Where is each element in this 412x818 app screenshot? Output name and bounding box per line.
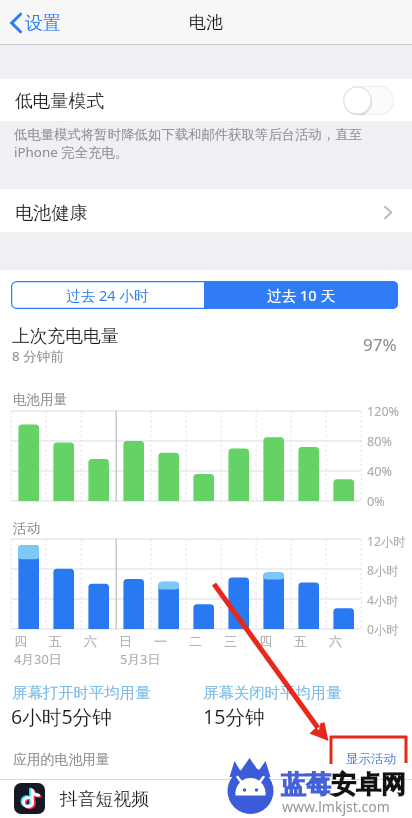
other: 电池健康 — [384, 206, 392, 219]
staticText: 0% — [367, 493, 385, 510]
staticText: 12小时 — [367, 533, 406, 550]
staticText: 一 — [154, 633, 167, 649]
staticText: www.lmkjst.com — [282, 797, 390, 816]
staticText: 80% — [367, 433, 392, 450]
staticText: 设置 — [25, 12, 61, 34]
button[interactable]: 过去 10 天 — [204, 281, 398, 309]
staticText: 蓝莓 — [281, 769, 331, 800]
staticText: 电池用量 — [13, 391, 67, 408]
staticText: 15分钟 — [203, 703, 265, 730]
staticText: 六 — [329, 633, 342, 649]
staticText: 应用的电池用量 — [13, 751, 110, 768]
staticText: 四 — [259, 633, 272, 649]
staticText: 六 — [84, 633, 97, 649]
staticText: 0小时 — [367, 621, 399, 638]
staticText: 电池 — [189, 12, 223, 33]
staticText: 上次充电电量 — [12, 325, 119, 347]
button[interactable]: 抖音短视频 — [0, 779, 412, 818]
staticText: 8小时 — [367, 562, 399, 579]
staticText: 6小时5分钟 — [11, 703, 112, 730]
staticText: 日 — [119, 633, 132, 649]
staticText: 97% — [363, 333, 397, 356]
button[interactable]: 低电量模式 — [0, 79, 412, 121]
staticText: 电池健康 — [15, 201, 88, 224]
staticText: 40% — [367, 463, 392, 480]
staticText: 过去 24 小时 — [66, 285, 149, 305]
staticText: 低电量模式将暂时降低如下载和邮件获取等后台活动，直至 iPhone 完全充电。 — [14, 126, 363, 161]
button[interactable]: 电池健康 — [0, 189, 412, 232]
staticText: 四 — [14, 633, 27, 649]
staticText: 屏幕关闭时平均用量 — [203, 683, 342, 702]
button[interactable]: 低电量模式开关 — [343, 86, 394, 115]
staticText: 抖音短视频 — [60, 788, 149, 810]
staticText: 4月30日 — [14, 650, 62, 667]
staticText: 过去 10 天 — [267, 285, 336, 305]
staticText: 8 分钟前 — [12, 347, 64, 365]
staticText: 4小时 — [367, 592, 399, 609]
staticText: 屏幕打开时平均用量 — [12, 683, 151, 702]
staticText: 五 — [294, 633, 307, 649]
staticText: 二 — [189, 633, 202, 649]
staticText: 安卓网 — [331, 769, 406, 800]
staticText: 活动 — [13, 520, 40, 537]
staticText: 显示活动 — [346, 751, 396, 767]
staticText: 5月3日 — [120, 650, 161, 667]
staticText: 五 — [49, 633, 62, 649]
button[interactable]: 设置 — [10, 0, 61, 45]
staticText: 120% — [367, 403, 400, 420]
staticText: 低电量模式 — [15, 90, 104, 112]
button[interactable]: 过去 24 小时 — [11, 281, 204, 309]
staticText: 三 — [224, 633, 237, 649]
